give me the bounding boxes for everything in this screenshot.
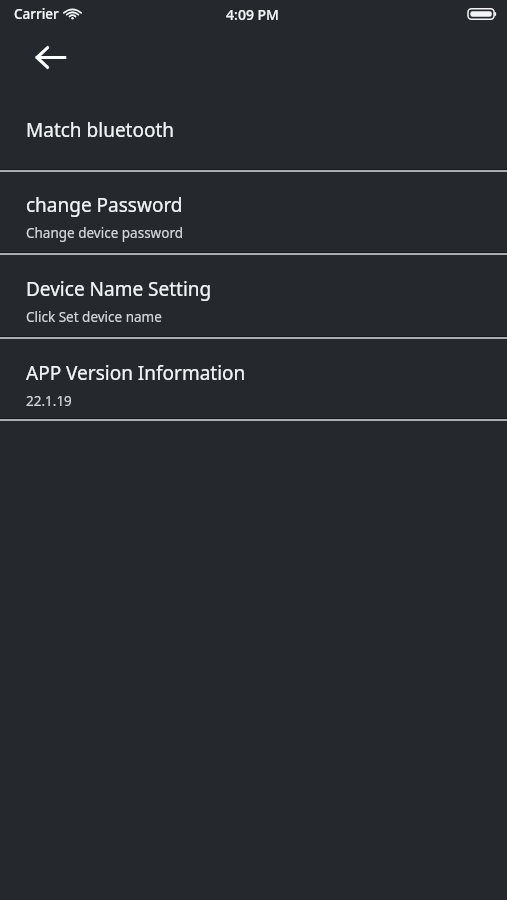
staticText: Device Name Setting bbox=[26, 276, 212, 302]
button[interactable]: Match bluetooth bbox=[0, 98, 507, 169]
button[interactable]: APP Version Information bbox=[0, 339, 507, 418]
staticText: 22.1.19 bbox=[26, 392, 72, 410]
staticText: change Password bbox=[26, 192, 183, 218]
staticText: 4:09 PM bbox=[226, 5, 279, 24]
staticText: Match bluetooth bbox=[26, 117, 175, 143]
button[interactable]: Device Name Setting bbox=[0, 255, 507, 336]
button[interactable]: change Password bbox=[0, 172, 507, 252]
staticText: Carrier bbox=[14, 5, 59, 23]
staticText: Change device password bbox=[26, 224, 184, 242]
button[interactable]: Back bbox=[21, 28, 79, 86]
staticText: Click Set device name bbox=[26, 308, 162, 326]
staticText: APP Version Information bbox=[26, 360, 246, 386]
